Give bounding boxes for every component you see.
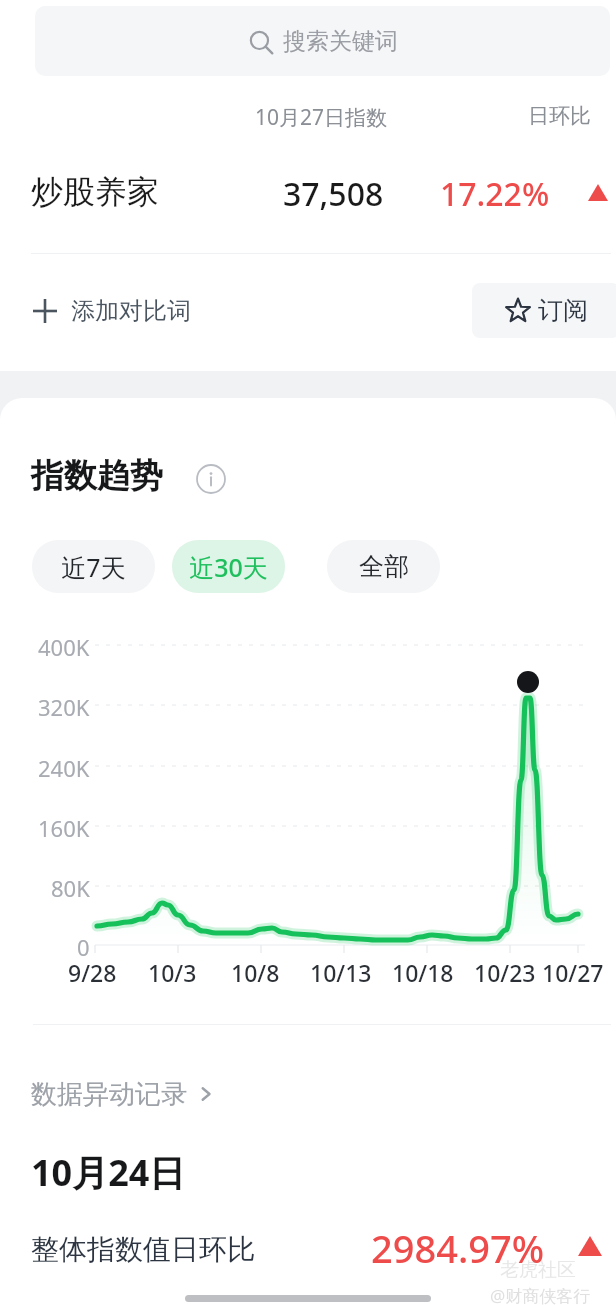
staticText: 10/27 bbox=[542, 957, 604, 988]
staticText: 9/28 bbox=[68, 957, 117, 988]
button[interactable]: 搜索关键词 bbox=[35, 6, 610, 76]
button[interactable]: 近7天 bbox=[32, 540, 155, 593]
button[interactable]: 近30天 bbox=[172, 540, 285, 593]
staticText: 37,508 bbox=[283, 172, 384, 216]
staticText: 80K bbox=[51, 873, 90, 903]
staticText: 320K bbox=[38, 692, 90, 722]
staticText: 全部 bbox=[359, 551, 409, 582]
staticText: @财商侠客行 bbox=[490, 1284, 591, 1305]
staticText: 10月24日 bbox=[31, 1148, 186, 1197]
staticText: 400K bbox=[38, 632, 90, 662]
staticText: 160K bbox=[38, 813, 90, 843]
staticText: 10/3 bbox=[148, 957, 197, 988]
staticText: 订阅 bbox=[538, 295, 588, 326]
staticText: 整体指数值日环比 bbox=[31, 1232, 255, 1267]
staticText: 10/8 bbox=[231, 957, 280, 988]
button[interactable]: 添加对比词 bbox=[31, 287, 191, 335]
staticText: 近7天 bbox=[61, 550, 126, 584]
button[interactable]: Info bbox=[196, 464, 226, 494]
staticText: 10/23 bbox=[474, 957, 536, 988]
staticText: 指数趋势 bbox=[31, 455, 163, 497]
staticText: 数据异动记录 bbox=[31, 1078, 187, 1111]
staticText: 日环比 bbox=[528, 103, 591, 129]
staticText: 近30天 bbox=[189, 550, 268, 584]
staticText: 炒股养家 bbox=[31, 172, 159, 212]
staticText: 搜索关键词 bbox=[283, 27, 398, 56]
staticText: 添加对比词 bbox=[71, 296, 191, 326]
staticText: 老虎社区 bbox=[500, 1258, 576, 1282]
staticText: 2984.97% bbox=[371, 1222, 545, 1274]
button[interactable]: 全部 bbox=[327, 540, 440, 593]
button[interactable]: 订阅 bbox=[472, 283, 616, 338]
staticText: 0 bbox=[77, 932, 90, 962]
staticText: 17.22% bbox=[440, 172, 550, 216]
staticText: 10/13 bbox=[310, 957, 372, 988]
staticText: 10月27日指数 bbox=[255, 103, 388, 132]
staticText: 10/18 bbox=[392, 957, 454, 988]
button[interactable]: 数据异动记录 bbox=[31, 1070, 217, 1118]
staticText: 240K bbox=[38, 753, 90, 783]
